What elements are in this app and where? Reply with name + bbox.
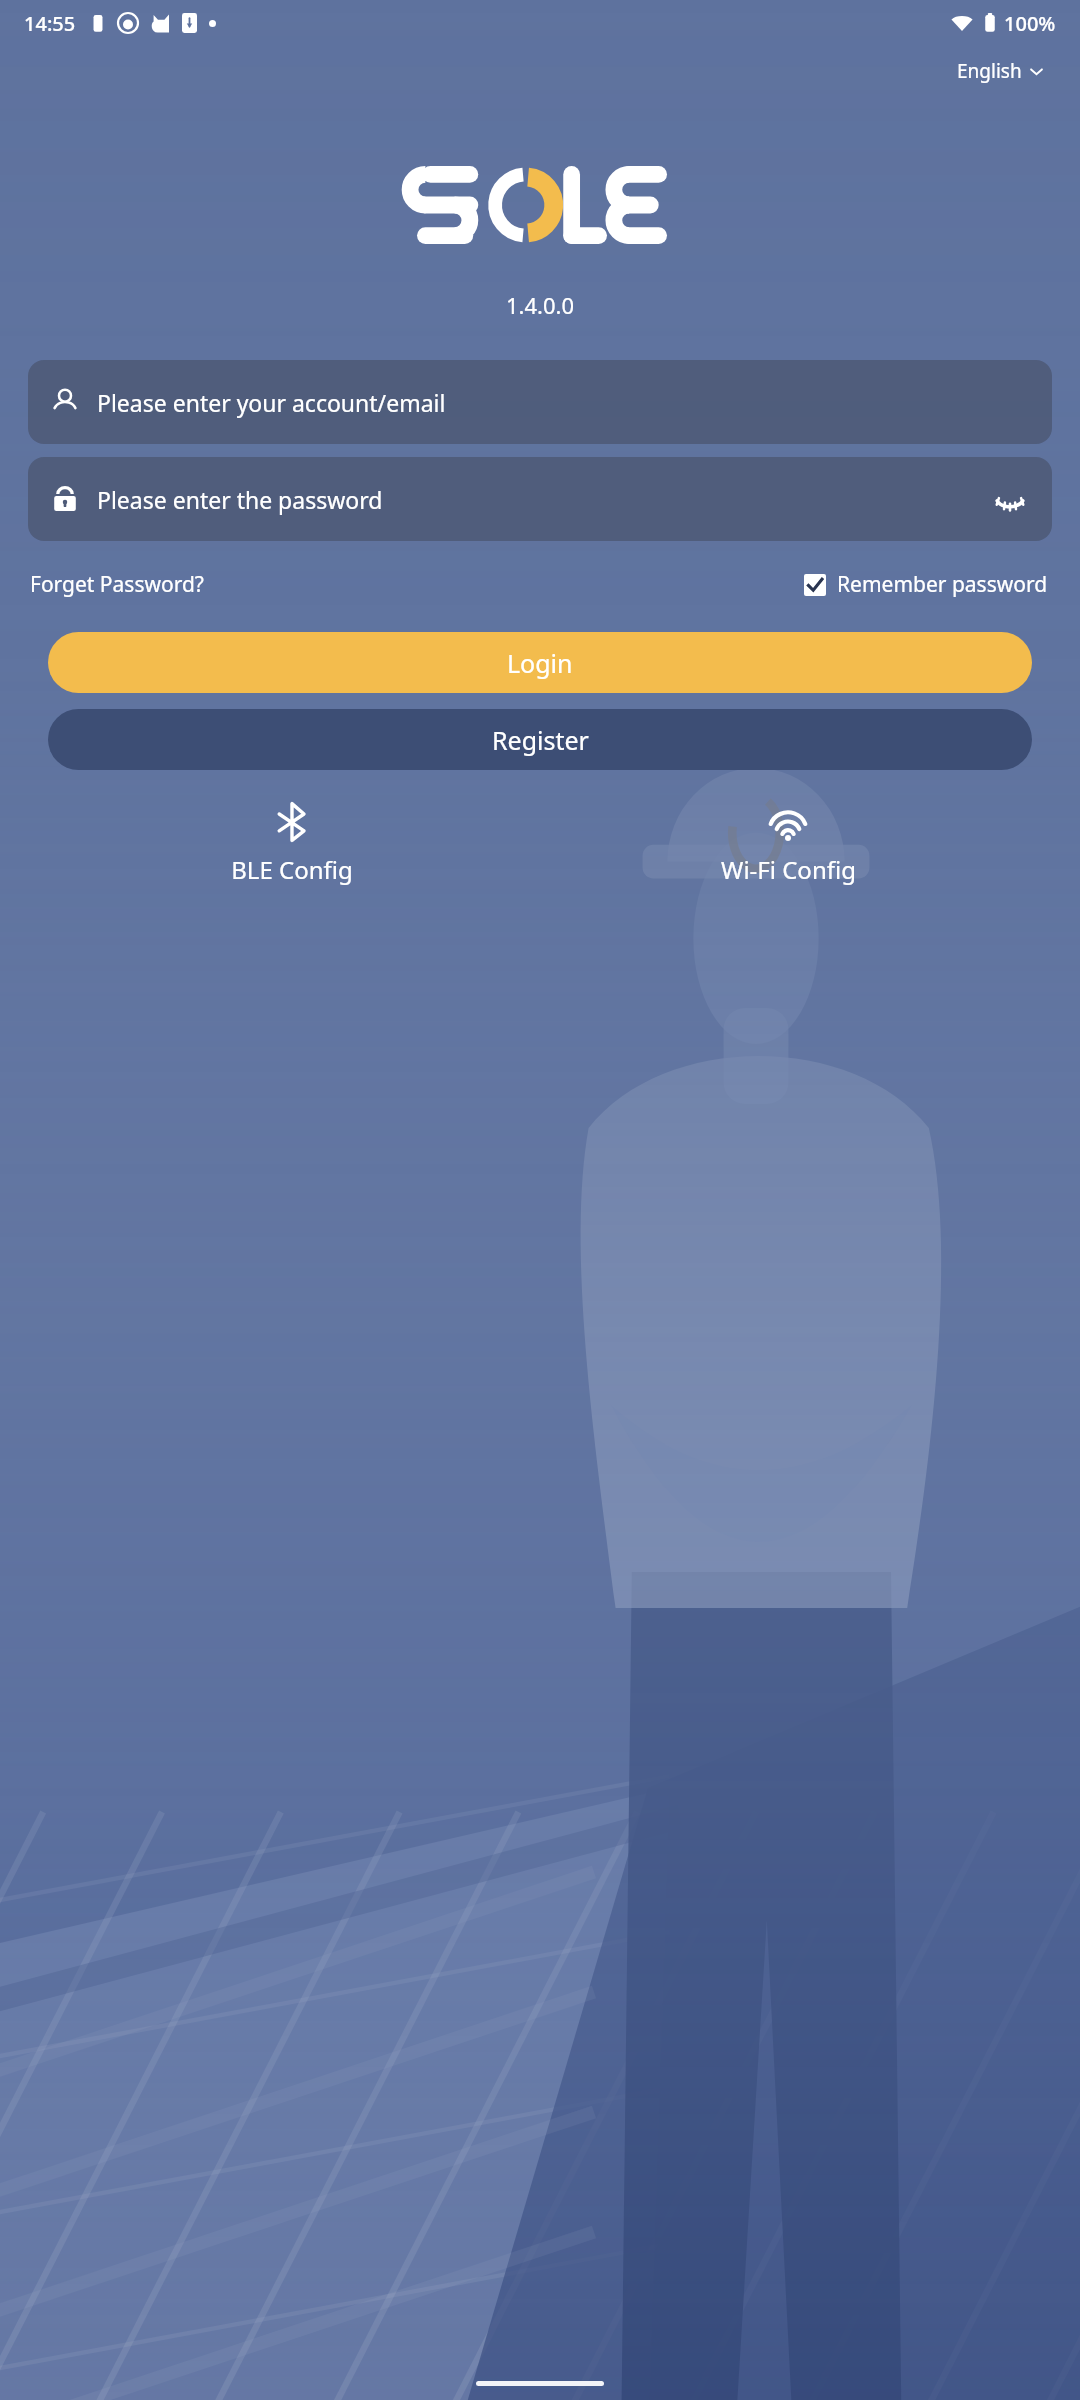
staticText: 100% (1004, 10, 1056, 37)
button[interactable]: Please enter your account/email (28, 360, 1052, 444)
staticText: English (957, 58, 1022, 84)
button[interactable]: English (951, 54, 1050, 88)
button[interactable]: BLE Config (44, 796, 540, 892)
button[interactable]: Login (48, 632, 1032, 693)
button[interactable]: Remember password (802, 564, 1050, 605)
staticText: Please enter your account/email (97, 387, 446, 418)
button[interactable]: Show password (990, 479, 1030, 519)
staticText: 14:55 (24, 10, 76, 37)
staticText: BLE Config (231, 853, 353, 886)
staticText: Wi-Fi Config (721, 853, 856, 886)
button[interactable]: Forget Password? (28, 564, 206, 605)
staticText: Register (492, 723, 589, 757)
button[interactable]: Wi-Fi Config (540, 796, 1036, 892)
staticText: Login (507, 646, 573, 680)
staticText: 1.4.0.0 (506, 290, 575, 320)
button[interactable]: Please enter the password (28, 457, 1052, 541)
button[interactable]: Register (48, 709, 1032, 770)
staticText: Remember password (837, 570, 1048, 599)
staticText: Forget Password? (30, 570, 204, 599)
staticText: Please enter the password (97, 484, 383, 515)
